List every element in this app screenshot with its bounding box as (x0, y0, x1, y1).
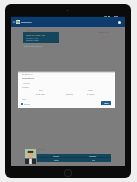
staticText: Print list (24, 103, 31, 105)
staticText: See full order history (24, 45, 43, 48)
staticText: Schedule (89, 155, 97, 157)
staticText: Contact (53, 155, 60, 157)
staticText: Date (39, 89, 43, 91)
staticText: Shipments (22, 76, 35, 79)
staticText: Call (92, 159, 95, 161)
staticText: 3 parcels (23, 82, 31, 84)
staticText: Track (104, 102, 109, 104)
button[interactable]: Order No. 5829-1143 (23, 32, 59, 43)
staticText: Ships in 2 days (26, 39, 39, 42)
button[interactable]: Email (37, 158, 75, 162)
staticText: 14 Mar 2024 (35, 93, 45, 95)
button[interactable]: Account (118, 21, 121, 24)
button[interactable]: Menu (12, 20, 16, 24)
staticText: Order No. 5829-1143 (26, 34, 46, 37)
staticText: Summary of (22, 73, 33, 76)
staticText: Placed 12 Mar (26, 37, 39, 40)
staticText: FastShip (66, 93, 73, 95)
button[interactable]: Home (16, 20, 20, 24)
staticText: In Transit (87, 93, 95, 95)
staticText: Total (22, 98, 26, 100)
staticText: Details (27, 29, 33, 31)
staticText: Email (54, 159, 59, 161)
button[interactable]: Track (101, 101, 111, 105)
staticText: Tracking (22, 86, 29, 88)
staticText: 9:41 (12, 16, 15, 18)
button[interactable]: Contact (37, 154, 75, 157)
button[interactable]: Schedule (75, 154, 110, 157)
button[interactable]: Call (75, 158, 110, 162)
staticText: Status (88, 89, 93, 91)
button[interactable]: Print list (21, 102, 37, 105)
staticText: Your Rep (37, 148, 45, 151)
staticText: Order Total (99, 31, 109, 33)
staticText: $248.90 (100, 36, 109, 39)
staticText: PixelPrints (21, 21, 32, 24)
